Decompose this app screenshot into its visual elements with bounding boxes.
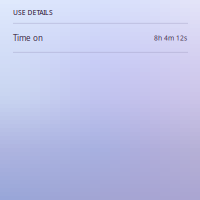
staticText: USE DETAILS <box>13 8 53 17</box>
button[interactable]: Time on <box>0 24 200 52</box>
staticText: Time on <box>13 32 43 43</box>
staticText: 8h 4m 12s <box>154 33 187 42</box>
